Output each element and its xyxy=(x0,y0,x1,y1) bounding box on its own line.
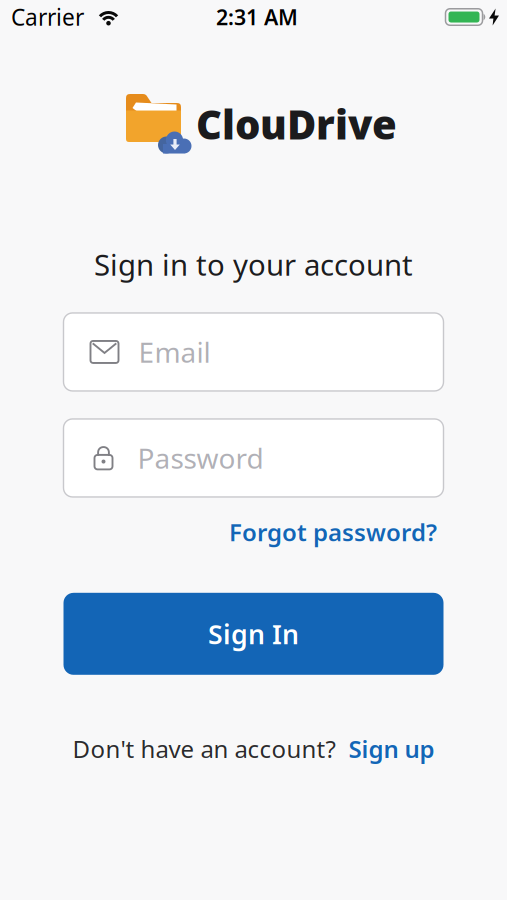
button[interactable]: Sign up xyxy=(348,733,434,765)
staticText: Password xyxy=(137,439,263,477)
staticText: Sign In xyxy=(208,616,299,651)
staticText: Forgot password? xyxy=(229,516,437,548)
staticText: Sign up xyxy=(348,733,434,765)
button[interactable]: Sign In xyxy=(63,593,443,675)
staticText: Carrier xyxy=(11,2,84,32)
button[interactable]: Forgot password? xyxy=(229,516,437,548)
staticText: ClouDrive xyxy=(196,97,397,150)
staticText: Email xyxy=(138,333,210,371)
staticText: Sign in to your account xyxy=(94,245,413,284)
staticText: 2:31 AM xyxy=(216,3,298,31)
staticText: Don't have an account? xyxy=(72,733,335,765)
